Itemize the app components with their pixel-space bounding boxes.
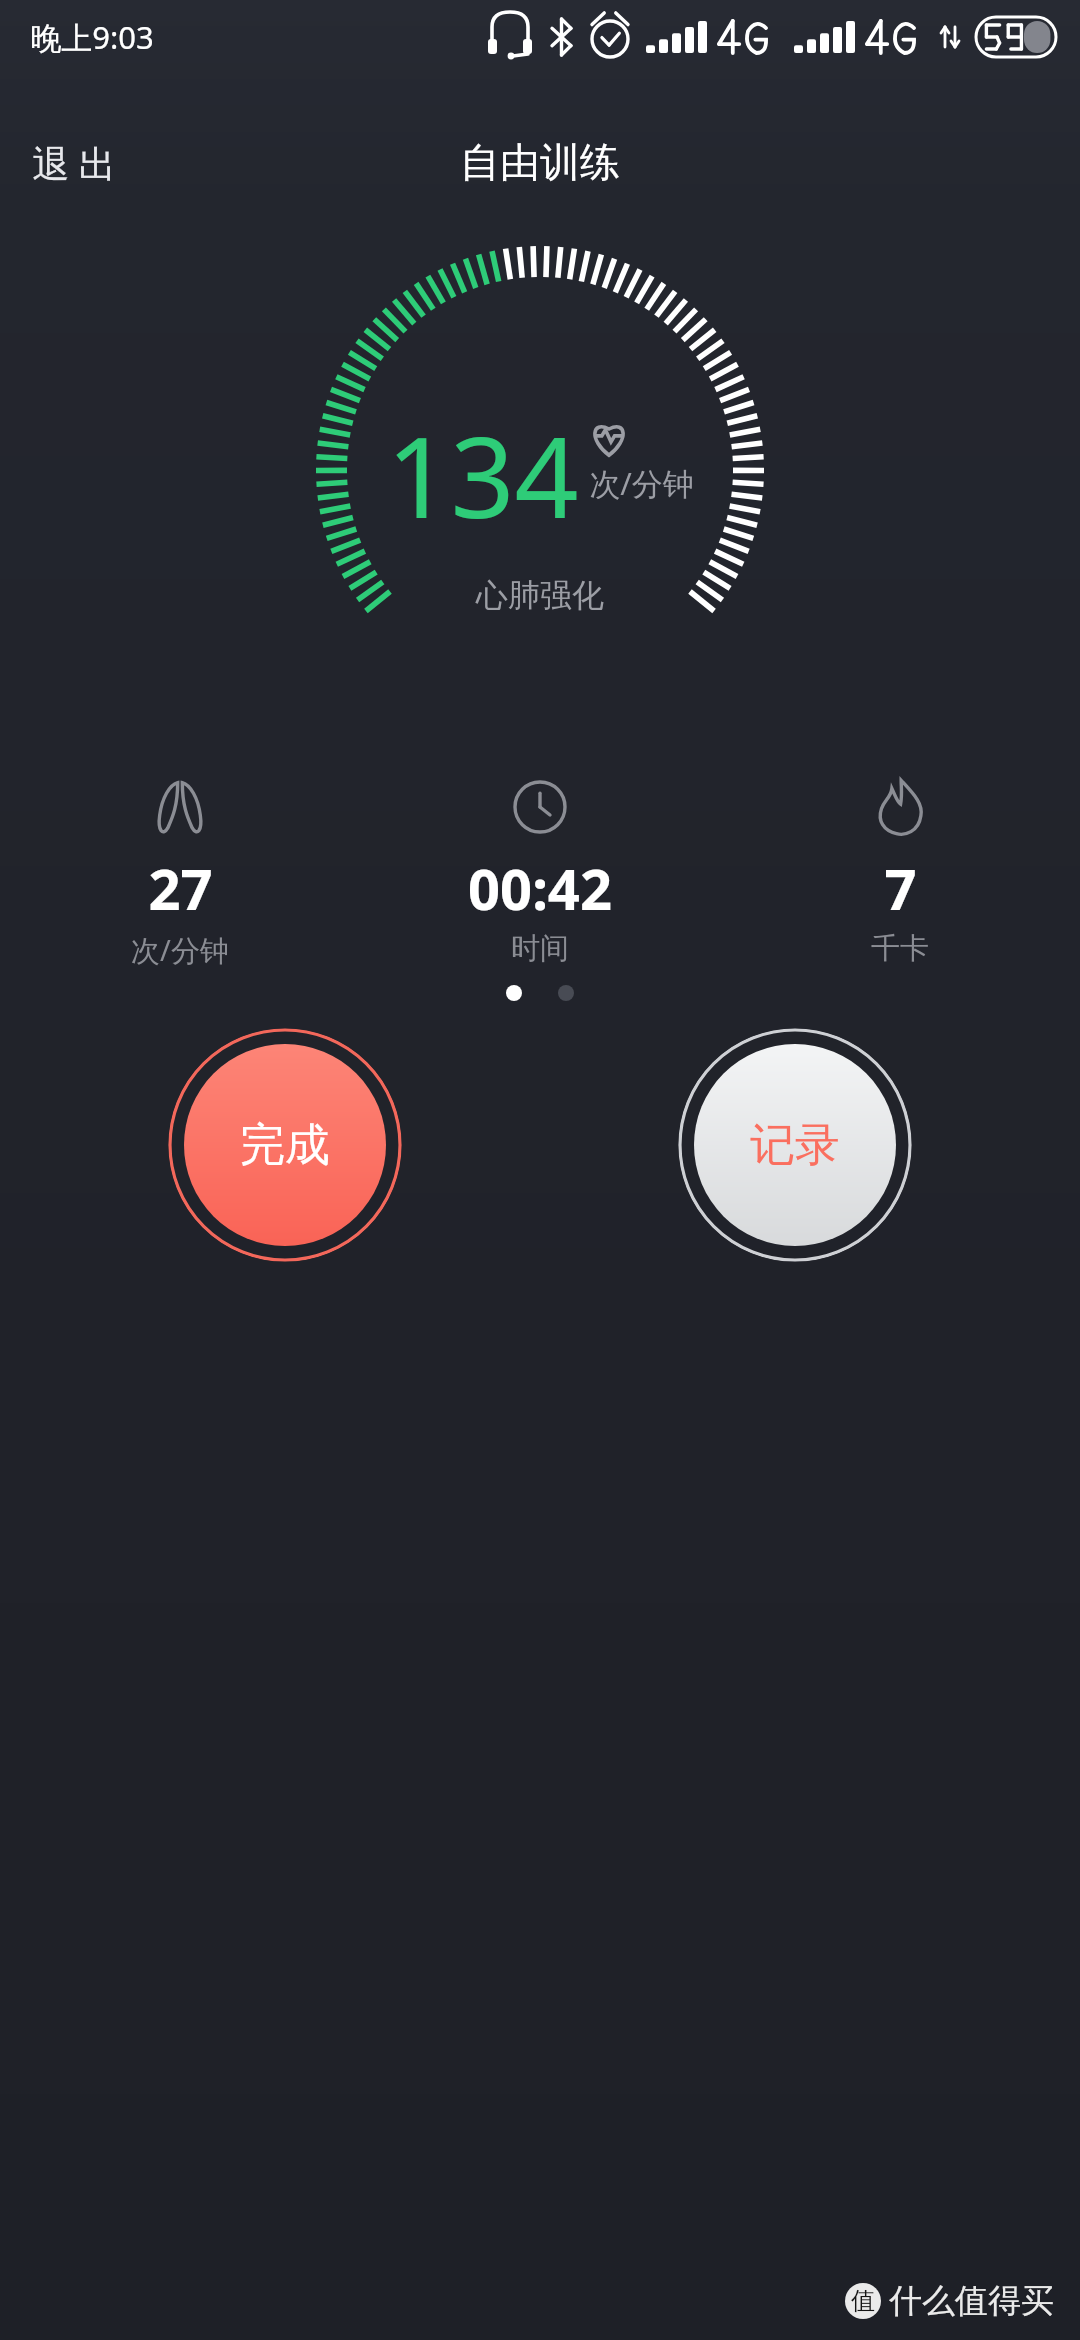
staticText: 次/分钟 <box>589 462 694 504</box>
staticText: 时间 <box>511 930 569 967</box>
button[interactable]: 记录 <box>678 1028 912 1262</box>
button[interactable]: 00:42 <box>425 778 655 967</box>
staticText: 心肺强化 <box>476 575 604 615</box>
staticText: 次/分钟 <box>131 930 229 970</box>
button[interactable]: 退 出 <box>12 127 136 198</box>
button[interactable]: 7 <box>785 778 1015 967</box>
button[interactable]: 27 <box>65 778 295 970</box>
staticText: 千卡 <box>871 930 929 967</box>
button[interactable]: 完成 <box>168 1028 402 1262</box>
staticText: 什么值得买 <box>889 2280 1054 2322</box>
staticText: 134 <box>386 398 579 551</box>
staticText: 00:42 <box>468 850 612 926</box>
staticText: 晚上9:03 <box>30 16 154 58</box>
staticText: 7 <box>884 850 917 926</box>
staticText: 记录 <box>750 1117 840 1174</box>
staticText: 27 <box>148 850 213 926</box>
staticText: 完成 <box>240 1117 330 1174</box>
staticText: 自由训练 <box>460 137 620 187</box>
staticText: 值 <box>851 2286 875 2316</box>
staticText: 退 出 <box>32 137 116 188</box>
